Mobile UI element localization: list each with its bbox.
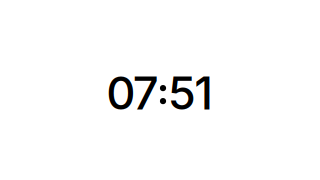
staticText: 07 51 [106,66,213,120]
